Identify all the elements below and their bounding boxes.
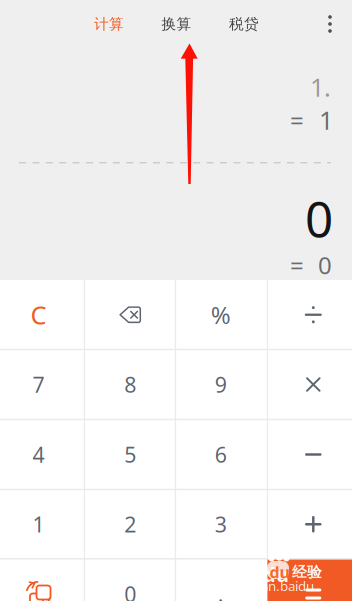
staticText: 4 xyxy=(32,440,44,469)
button[interactable]: 7 xyxy=(0,349,84,419)
button[interactable]: 8 xyxy=(84,349,175,419)
button[interactable] xyxy=(267,559,352,601)
staticText: 9 xyxy=(215,370,227,399)
button[interactable] xyxy=(267,419,352,489)
button[interactable]: % xyxy=(175,280,267,349)
staticText: 1 xyxy=(32,510,44,538)
staticText: C xyxy=(30,298,46,331)
button[interactable]: 换算 xyxy=(147,4,205,44)
button[interactable] xyxy=(267,489,352,559)
staticText: du xyxy=(269,561,289,583)
button[interactable] xyxy=(267,280,352,349)
button[interactable]: 0 xyxy=(84,559,175,601)
staticText: 1. xyxy=(310,70,331,104)
button[interactable] xyxy=(0,559,84,601)
button[interactable]: 计算 xyxy=(80,4,138,44)
staticText: 6 xyxy=(215,440,227,469)
staticText: 换算 xyxy=(161,15,191,33)
staticText: 计算 xyxy=(94,15,124,33)
button[interactable]: 3 xyxy=(175,489,267,559)
staticText: 7 xyxy=(32,370,44,399)
button[interactable] xyxy=(267,349,352,419)
button[interactable]: More options xyxy=(316,9,344,39)
staticText: 税贷 xyxy=(229,15,259,33)
staticText: 0 xyxy=(305,185,333,251)
button[interactable] xyxy=(84,280,175,349)
button[interactable]: 1 xyxy=(0,489,84,559)
button[interactable]: . xyxy=(175,559,267,601)
button[interactable]: C xyxy=(0,280,84,349)
staticText: 0 xyxy=(318,249,332,281)
button[interactable]: 4 xyxy=(0,419,84,489)
button[interactable]: 税贷 xyxy=(215,4,273,44)
staticText: Baidu xyxy=(232,561,289,588)
staticText: 0 xyxy=(124,580,136,601)
staticText: = xyxy=(290,249,304,281)
staticText: = xyxy=(290,104,304,136)
button[interactable]: 2 xyxy=(84,489,175,559)
button[interactable]: 6 xyxy=(175,419,267,489)
staticText: 3 xyxy=(215,510,227,538)
staticText: % xyxy=(211,299,231,331)
staticText: 5 xyxy=(124,440,136,469)
staticText: . xyxy=(218,580,224,601)
staticText: 1 xyxy=(319,103,333,137)
staticText: 2 xyxy=(124,510,136,538)
staticText: jingyan.baidu.com xyxy=(232,577,318,601)
button[interactable]: 9 xyxy=(175,349,267,419)
button[interactable]: 5 xyxy=(84,419,175,489)
staticText: 经验 xyxy=(292,563,322,581)
staticText: 8 xyxy=(124,370,136,399)
